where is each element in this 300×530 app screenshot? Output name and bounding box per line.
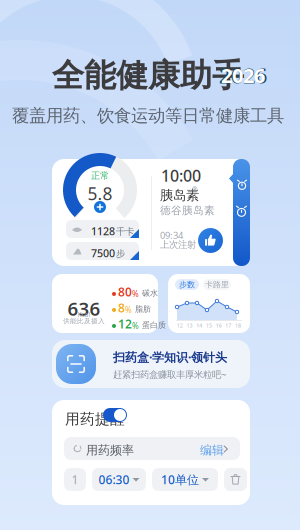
staticText: 卡路里: [205, 280, 229, 289]
staticText: Kcal: [77, 310, 90, 319]
staticText: 步数: [179, 280, 195, 289]
staticText: 2026: [219, 61, 267, 89]
staticText: 10:00: [161, 165, 201, 186]
staticText: 步: [116, 248, 125, 259]
staticText: 5.8: [87, 182, 112, 205]
staticText: 赶紧扫药盒赚取丰厚米粒吧~: [113, 368, 226, 380]
staticText: 上次注射: [160, 239, 196, 250]
staticText: 12: [118, 316, 132, 332]
staticText: 12: [177, 322, 183, 329]
staticText: %: [132, 321, 139, 331]
staticText: 13: [186, 322, 192, 329]
staticText: 德谷胰岛素: [160, 204, 215, 217]
staticText: 15: [206, 322, 212, 329]
staticText: 2026: [221, 62, 265, 88]
button[interactable]: 扫药盒·学知识·领针头: [52, 340, 250, 388]
staticText: %: [125, 305, 132, 315]
button[interactable]: 10单位: [152, 468, 218, 491]
staticText: 编辑: [200, 443, 224, 458]
staticText: 09:34: [160, 229, 183, 241]
button[interactable]: Delete: [224, 468, 247, 491]
staticText: 千卡: [116, 226, 134, 237]
staticText: 18: [235, 322, 241, 329]
staticText: 80: [118, 284, 132, 300]
staticText: 碳水: [142, 288, 158, 298]
staticText: 16: [216, 322, 222, 329]
staticText: 覆盖用药、饮食运动等日常健康工具: [12, 105, 284, 126]
staticText: 全能健康助手: [52, 56, 244, 95]
button[interactable]: 用药频率: [64, 437, 240, 460]
staticText: 蛋白质: [142, 320, 166, 330]
staticText: 1128: [91, 224, 115, 238]
staticText: 8: [118, 300, 125, 316]
staticText: 用药频率: [86, 443, 134, 458]
staticText: 脂肪: [135, 304, 151, 314]
staticText: 正常: [91, 170, 109, 181]
staticText: 06:30: [98, 471, 129, 487]
staticText: 1: [71, 471, 78, 487]
staticText: %: [132, 289, 139, 299]
staticText: 胰岛素: [160, 187, 199, 203]
staticText: 14: [196, 322, 202, 329]
staticText: ®: [192, 185, 198, 194]
staticText: 17: [225, 322, 231, 329]
staticText: 扫药盒·学知识·领针头: [113, 349, 227, 365]
staticText: 用药提醒: [65, 410, 125, 428]
staticText: 10单位: [161, 471, 199, 487]
button[interactable]: 用药提醒: [103, 408, 127, 422]
staticText: 7500: [91, 246, 115, 260]
staticText: 636: [67, 296, 100, 321]
staticText: 供能比及摄入: [63, 317, 105, 325]
button[interactable]: 06:30: [92, 468, 146, 491]
